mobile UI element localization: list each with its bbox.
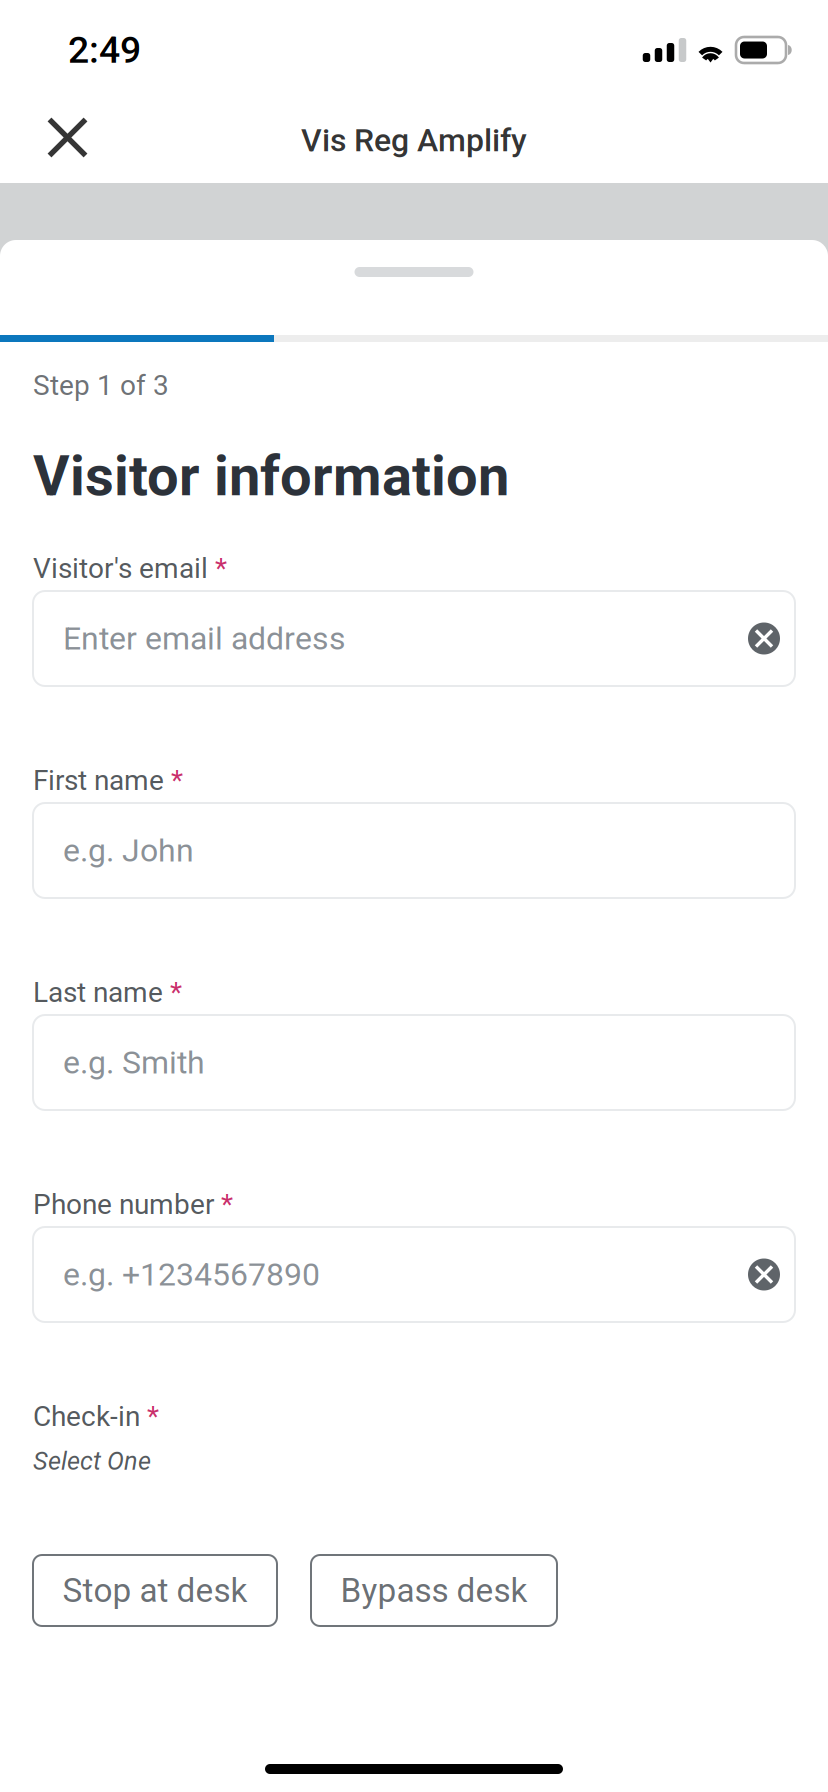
staticText: Step 1 of 3 [33,369,169,402]
staticText: e.g. Smith [63,1044,205,1081]
button[interactable]: Bypass desk [311,1555,557,1626]
staticText: Vis Reg Amplify [301,121,527,159]
button[interactable]: Close [22,92,113,183]
staticText: e.g. John [63,832,194,869]
staticText: Bypass desk [340,1571,527,1610]
staticText: * [140,1400,159,1433]
staticText: Phone number [33,1188,214,1221]
staticText: e.g. +1234567890 [63,1256,320,1293]
button[interactable]: Enter email address [33,591,795,686]
staticText: 2:49 [68,28,141,72]
staticText: Check-in [33,1400,140,1433]
staticText: Enter email address [63,620,346,657]
button[interactable]: e.g. +1234567890 [33,1227,795,1322]
staticText: Select One [33,1446,151,1476]
staticText: * [163,976,182,1009]
staticText: * [164,764,183,797]
button[interactable]: e.g. John [33,803,795,898]
staticText: * [208,552,227,585]
staticText: Visitor's email [33,552,208,585]
button[interactable]: Clear text [733,607,795,669]
button[interactable]: Clear text [733,1243,795,1305]
staticText: Visitor information [33,443,509,509]
staticText: Last name [33,976,163,1009]
staticText: * [214,1188,233,1221]
button[interactable]: e.g. Smith [33,1015,795,1110]
staticText: Stop at desk [62,1571,247,1610]
button[interactable]: Stop at desk [33,1555,277,1626]
staticText: First name [33,764,164,797]
